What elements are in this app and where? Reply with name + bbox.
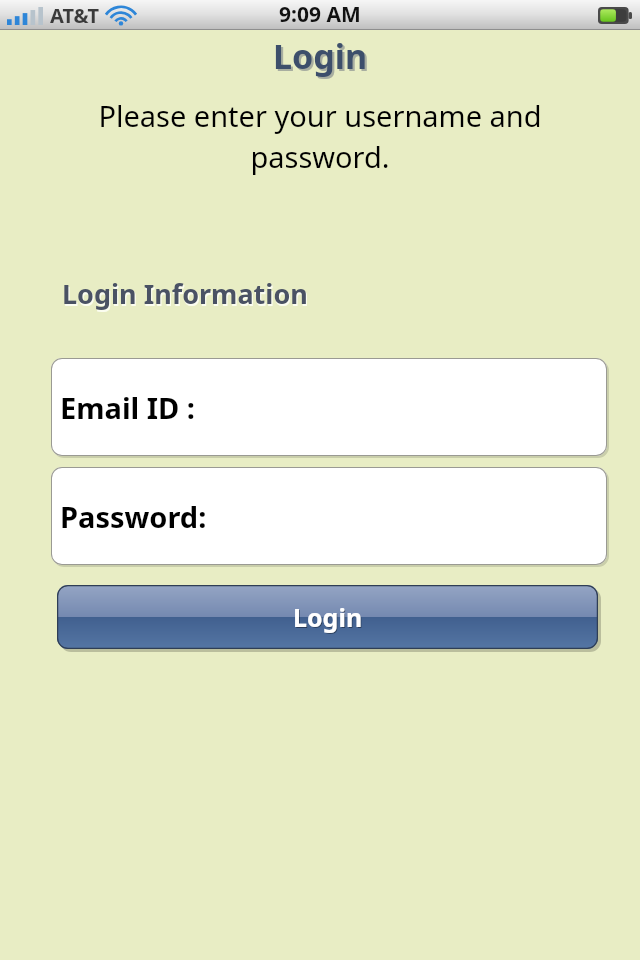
staticText: Login <box>273 33 368 79</box>
staticText: Email ID : <box>60 388 195 427</box>
staticText: Login <box>275 35 370 81</box>
staticText: Please enter your username and password. <box>44 96 596 177</box>
staticText: Password: <box>60 497 207 536</box>
button[interactable]: Password: <box>51 467 607 565</box>
staticText: Login <box>294 601 364 635</box>
button[interactable]: Login <box>57 585 598 649</box>
staticText: Login Information <box>62 275 308 312</box>
staticText: Login Information <box>63 277 309 314</box>
staticText: AT&T <box>50 2 99 29</box>
button[interactable]: Email ID : <box>51 358 607 456</box>
staticText: 9:09 AM <box>279 0 361 29</box>
staticText: Login <box>293 600 363 634</box>
